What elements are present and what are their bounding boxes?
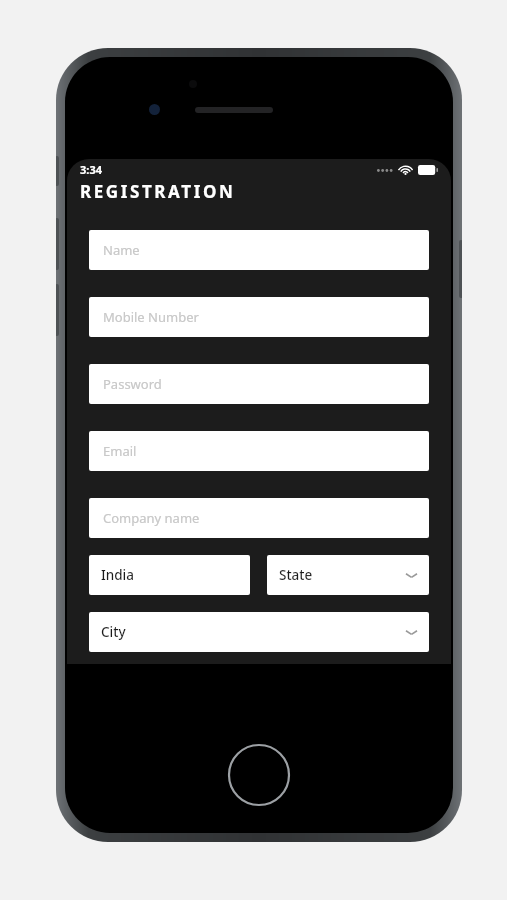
button[interactable]: City bbox=[89, 612, 429, 652]
staticText: City bbox=[101, 623, 126, 641]
button[interactable]: Email bbox=[89, 431, 429, 471]
staticText: 3:34 bbox=[80, 162, 102, 177]
staticText: Company name bbox=[103, 509, 200, 527]
staticText: REGISTRATION bbox=[80, 180, 236, 203]
staticText: India bbox=[101, 566, 134, 584]
staticText: Name bbox=[103, 241, 140, 259]
button[interactable]: Home bbox=[227, 743, 291, 807]
staticText: Email bbox=[103, 442, 137, 460]
button[interactable]: India bbox=[89, 555, 250, 595]
button[interactable]: Company name bbox=[89, 498, 429, 538]
staticText: Mobile Number bbox=[103, 308, 199, 326]
button[interactable]: Name bbox=[89, 230, 429, 270]
button[interactable]: State bbox=[267, 555, 429, 595]
staticText: State bbox=[279, 566, 313, 584]
button[interactable]: Mobile Number bbox=[89, 297, 429, 337]
button[interactable]: Password bbox=[89, 364, 429, 404]
staticText: Password bbox=[103, 375, 162, 393]
